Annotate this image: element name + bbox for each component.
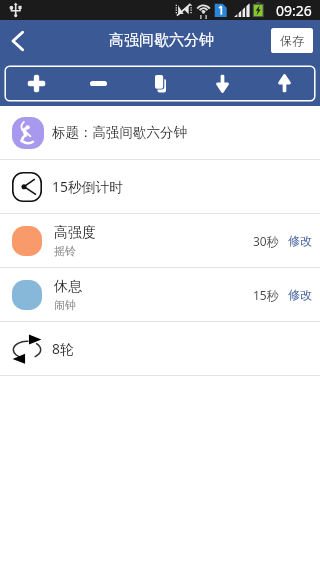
staticText: 8轮 [52, 339, 74, 358]
button[interactable]: 修改 [286, 226, 314, 255]
button[interactable]: Add [5, 66, 67, 100]
button[interactable]: 修改 [286, 280, 314, 309]
button[interactable]: 8轮 [0, 322, 320, 375]
staticText: 闹钟 [54, 298, 76, 312]
staticText: 保存 [280, 33, 304, 48]
staticText: 摇铃 [54, 244, 76, 258]
staticText: 标题：高强间歇六分钟 [52, 124, 187, 141]
button[interactable]: 高强度 [0, 214, 320, 267]
staticText: 15秒倒计时 [52, 177, 123, 196]
staticText: 30秒 [253, 233, 279, 249]
staticText: 修改 [288, 233, 312, 248]
staticText: 高强度 [54, 224, 96, 242]
button[interactable]: 休息 [0, 268, 320, 321]
button[interactable]: Move up [253, 66, 315, 100]
staticText: 09:26 [276, 1, 312, 20]
button[interactable]: Move down [191, 66, 253, 100]
button[interactable]: 标题：高强间歇六分钟 [0, 106, 320, 159]
button[interactable]: 保存 [271, 28, 313, 53]
button[interactable]: 15秒倒计时 [0, 160, 320, 213]
button[interactable]: Remove [67, 66, 129, 100]
staticText: 休息 [54, 278, 82, 296]
staticText: 修改 [288, 287, 312, 302]
button[interactable]: Back [0, 24, 33, 57]
staticText: 15秒 [253, 287, 279, 303]
button[interactable]: Copy [129, 66, 191, 100]
staticText: 高强间歇六分钟 [109, 31, 214, 50]
